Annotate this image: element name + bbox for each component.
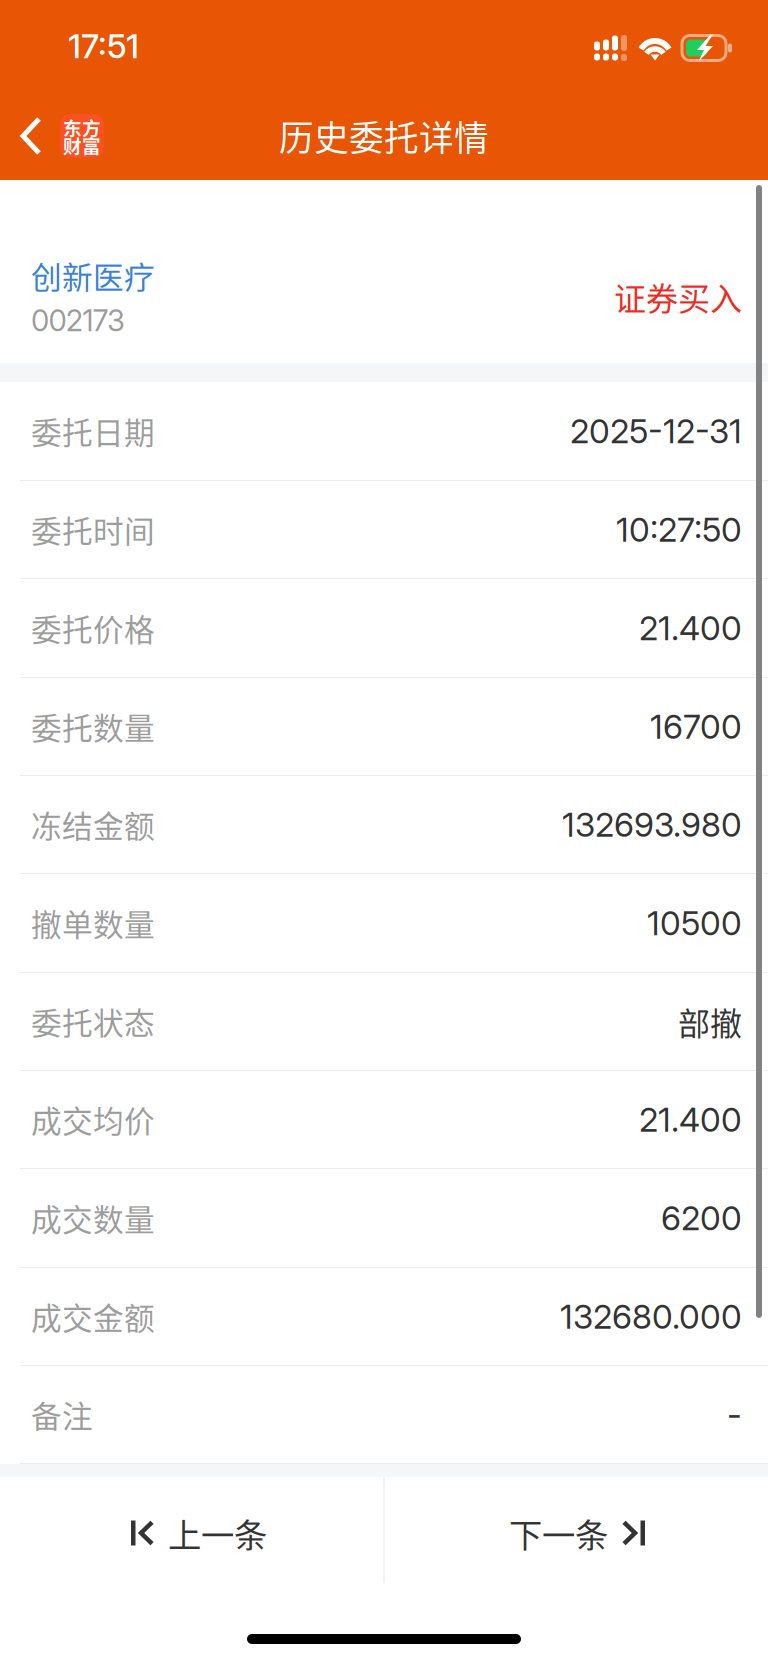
staticText: 上一条 (168, 1509, 267, 1557)
staticText: 132680.000 (560, 1296, 742, 1337)
staticText: 委托价格 (31, 606, 155, 650)
button[interactable]: 下一条 (384, 1477, 768, 1583)
staticText: 132693.980 (562, 804, 742, 845)
staticText: 创新医疗 (31, 253, 155, 298)
staticText: 002173 (31, 303, 125, 338)
staticText: 备注 (31, 1392, 93, 1437)
staticText: 21.400 (639, 1099, 742, 1140)
staticText: - (727, 1394, 742, 1435)
button[interactable]: 返回 (0, 92, 116, 180)
staticText: 委托日期 (31, 409, 155, 453)
staticText: 委托数量 (31, 704, 155, 749)
staticText: 证券买入 (614, 273, 742, 320)
staticText: 6200 (661, 1198, 742, 1238)
staticText: 10500 (647, 903, 742, 943)
staticText: 委托状态 (31, 999, 155, 1044)
staticText: 10:27:50 (616, 509, 742, 550)
staticText: 委托时间 (31, 507, 155, 552)
staticText: 21.400 (639, 608, 742, 648)
staticText: 成交数量 (31, 1196, 155, 1240)
staticText: 成交金额 (31, 1294, 155, 1339)
staticText: 16700 (650, 706, 742, 747)
staticText: 部撤 (678, 998, 742, 1045)
staticText: 2025-12-31 (570, 411, 742, 451)
staticText: 撤单数量 (31, 901, 155, 945)
staticText: 17:51 (68, 26, 139, 66)
staticText: 东方 (63, 113, 101, 140)
staticText: 成交均价 (31, 1097, 155, 1142)
button[interactable]: 上一条 (0, 1477, 384, 1583)
staticText: 冻结金额 (31, 802, 155, 847)
staticText: 下一条 (509, 1509, 608, 1557)
staticText: 财富 (63, 131, 101, 158)
staticText: 历史委托详情 (279, 111, 489, 161)
